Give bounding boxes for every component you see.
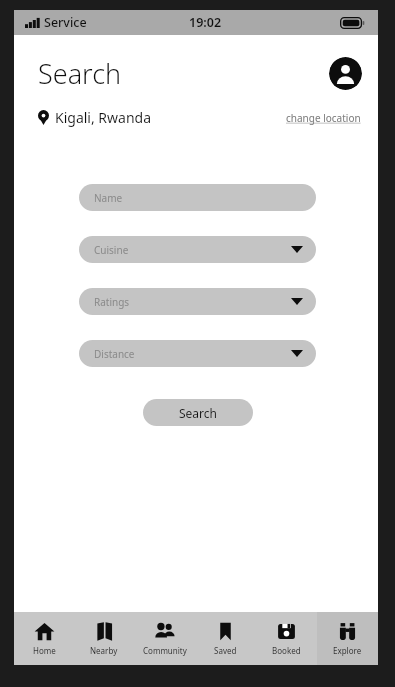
button[interactable]: Cuisine [79,236,316,263]
button[interactable]: Booked [256,612,317,665]
button[interactable]: Ratings [79,288,316,315]
button[interactable]: Saved [195,612,256,665]
button[interactable]: Explore [317,612,378,665]
staticText: Kigali, Rwanda [55,108,152,127]
button[interactable]: Distance [79,340,316,367]
staticText: Service [44,14,87,31]
button[interactable]: Kigali, Rwanda [38,108,152,127]
staticText: Ratings [94,295,130,309]
button[interactable]: Name [79,184,316,211]
staticText: Saved [214,645,237,656]
staticText: Search [38,55,122,92]
staticText: Cuisine [94,243,129,257]
button[interactable]: Search [143,399,253,426]
staticText: 19:02 [189,14,222,31]
staticText: Distance [94,347,135,361]
staticText: change location [286,111,361,125]
staticText: Community [143,645,187,656]
staticText: Home [33,645,56,656]
button[interactable]: Home [14,612,74,665]
staticText: Nearby [90,645,118,656]
button[interactable]: Nearby [74,612,134,665]
button[interactable]: change location [286,111,361,125]
button[interactable]: Community [134,612,195,665]
staticText: Name [94,191,123,205]
staticText: Explore [333,645,362,656]
button[interactable]: Account [329,57,362,90]
staticText: Booked [272,645,301,656]
staticText: Search [179,405,217,421]
